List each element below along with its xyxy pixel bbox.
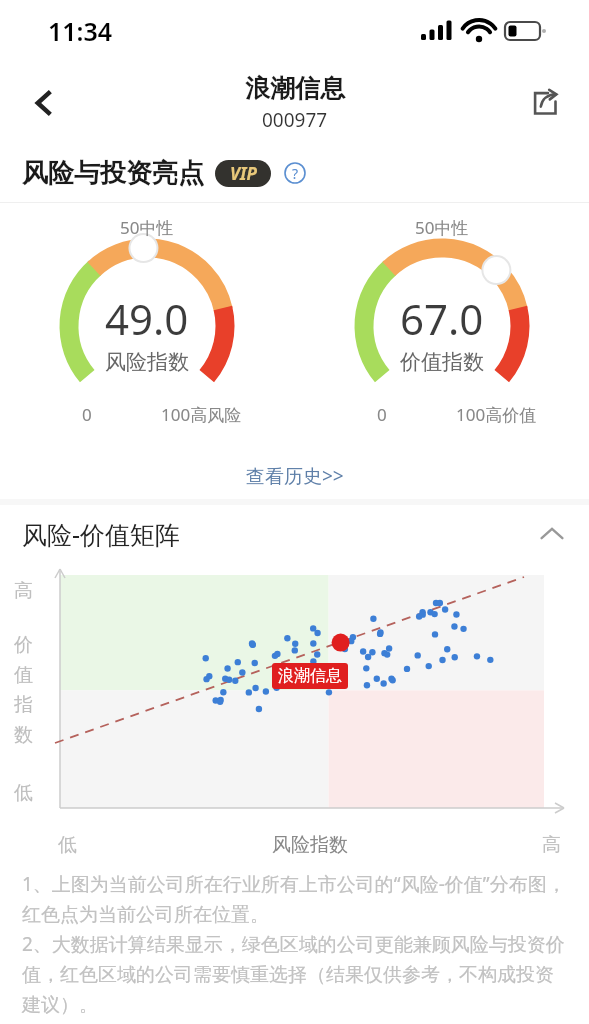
staticText: 值: [14, 663, 33, 687]
button[interactable]: 风险-价值矩阵: [0, 505, 589, 563]
button[interactable]: 浪潮信息: [272, 663, 348, 689]
staticText: 风险指数: [272, 833, 348, 857]
staticText: 49.0: [105, 290, 189, 347]
button[interactable]: Share: [519, 77, 571, 129]
staticText: 50中性: [120, 216, 174, 239]
staticText: 67.0: [400, 290, 484, 347]
staticText: VIP: [230, 162, 257, 185]
button[interactable]: VIP: [215, 160, 271, 187]
staticText: 高: [542, 833, 561, 857]
staticText: 指: [14, 693, 33, 717]
button[interactable]: 查看历史>>: [238, 455, 352, 497]
staticText: 风险与投资亮点: [22, 157, 204, 190]
staticText: 1、上图为当前公司所在行业所有上市公司的“风险-价值”分布图，红色点为当前公司所…: [22, 871, 569, 927]
staticText: 低: [58, 833, 77, 857]
staticText: 价: [14, 633, 33, 657]
staticText: 100高风险: [161, 403, 242, 426]
staticText: 浪潮信息: [245, 73, 345, 104]
button[interactable]: Back: [18, 77, 70, 129]
staticText: 2、大数据计算结果显示，绿色区域的公司更能兼顾风险与投资价值，红色区域的公司需要…: [22, 931, 569, 1017]
staticText: 价值指数: [400, 349, 484, 375]
staticText: 低: [14, 781, 33, 805]
staticText: 11:34: [48, 14, 113, 48]
staticText: 高: [14, 579, 33, 603]
staticText: 浪潮信息: [278, 666, 342, 686]
staticText: 50中性: [415, 216, 469, 239]
other: Collapse: [539, 521, 565, 547]
button[interactable]: Help: [284, 162, 306, 184]
staticText: ?: [292, 164, 299, 183]
staticText: 0: [82, 403, 92, 426]
staticText: 100高价值: [456, 403, 537, 426]
staticText: 000977: [262, 107, 328, 133]
staticText: 风险-价值矩阵: [22, 517, 181, 551]
staticText: 风险指数: [105, 349, 189, 375]
staticText: 查看历史>>: [246, 463, 344, 489]
staticText: 0: [377, 403, 387, 426]
staticText: 数: [14, 723, 33, 747]
